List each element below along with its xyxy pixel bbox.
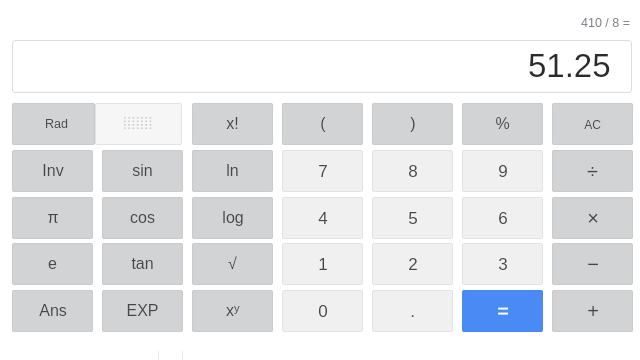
staticText: 410 / 8 = [581, 16, 630, 30]
button[interactable]: sin [102, 150, 183, 192]
staticText: + [587, 300, 599, 322]
staticText: 7 [318, 162, 328, 181]
button[interactable]: 7 [282, 150, 363, 192]
staticText: 9 [498, 162, 508, 181]
staticText: ln [226, 162, 239, 180]
button[interactable]: 5 [372, 197, 453, 239]
button[interactable]: Keyboard input [95, 103, 182, 145]
button[interactable]: AC [552, 103, 633, 145]
button[interactable]: 0 [282, 290, 363, 332]
staticText: 8 [408, 162, 418, 181]
button[interactable]: Inv [12, 150, 93, 192]
button[interactable]: % [462, 103, 543, 145]
button[interactable]: 2 [372, 243, 453, 285]
staticText: 4 [318, 209, 328, 228]
button[interactable]: ) [372, 103, 453, 145]
staticText: × [587, 207, 599, 229]
button[interactable]: 1 [282, 243, 363, 285]
staticText: ) [410, 115, 416, 133]
button[interactable]: tan [102, 243, 183, 285]
staticText: ( [320, 115, 326, 133]
button[interactable]: √ [192, 243, 273, 285]
staticText: = [497, 300, 509, 322]
button[interactable]: ÷ [552, 150, 633, 192]
staticText: AC [584, 118, 601, 131]
button[interactable]: 8 [372, 150, 453, 192]
staticText: ÷ [587, 160, 598, 182]
button[interactable]: xy [192, 290, 273, 332]
button[interactable]: 51.25 [12, 40, 632, 93]
staticText: 5 [408, 209, 418, 228]
button[interactable]: ( [282, 103, 363, 145]
button[interactable]: x! [192, 103, 273, 145]
staticText: EXP [126, 302, 159, 320]
staticText: Rad [45, 117, 68, 131]
staticText: Ans [39, 302, 67, 320]
staticText: xy [226, 302, 240, 320]
staticText: % [495, 115, 510, 133]
staticText: 1 [318, 255, 328, 274]
button[interactable]: Rad [12, 103, 95, 145]
staticText: tan [131, 255, 154, 273]
button[interactable]: × [552, 197, 633, 239]
button[interactable]: π [12, 197, 93, 239]
button[interactable]: EXP [102, 290, 183, 332]
button[interactable]: − [552, 243, 633, 285]
button[interactable]: . [372, 290, 453, 332]
staticText: 51.25 [528, 47, 611, 84]
staticText: x! [226, 115, 239, 133]
staticText: − [587, 253, 599, 275]
staticText: log [222, 209, 244, 227]
button[interactable]: ln [192, 150, 273, 192]
button[interactable]: 6 [462, 197, 543, 239]
staticText: 6 [498, 209, 508, 228]
button[interactable]: 4 [282, 197, 363, 239]
staticText: Inv [42, 162, 64, 180]
staticText: cos [130, 209, 155, 227]
staticText: 2 [408, 255, 418, 274]
staticText: π [47, 209, 59, 227]
staticText: e [48, 255, 57, 273]
button[interactable]: = [462, 290, 543, 332]
button[interactable]: cos [102, 197, 183, 239]
staticText: 3 [498, 255, 508, 274]
staticText: sin [132, 162, 153, 180]
button[interactable]: 9 [462, 150, 543, 192]
staticText: 0 [318, 302, 328, 321]
button[interactable]: e [12, 243, 93, 285]
button[interactable]: log [192, 197, 273, 239]
staticText: . [410, 302, 415, 321]
button[interactable]: 3 [462, 243, 543, 285]
button[interactable]: Ans [12, 290, 93, 332]
button[interactable]: + [552, 290, 633, 332]
staticText: √ [228, 255, 237, 273]
